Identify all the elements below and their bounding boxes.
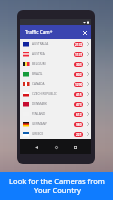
button[interactable]: GERMANY (20, 119, 91, 129)
staticText: Traffic Cam+ (25, 29, 53, 35)
staticText: 802 (76, 73, 82, 77)
button[interactable]: CANADA (20, 79, 91, 89)
staticText: CANADA (32, 82, 45, 86)
staticText: GREECE (32, 132, 44, 136)
staticText: Look for the Cameras from (9, 176, 105, 186)
button[interactable]: AUSTRIA (20, 49, 91, 59)
staticText: AUSTRIA (32, 52, 45, 56)
staticText: 980 (76, 123, 82, 127)
staticText: BELGIUM (32, 62, 46, 66)
staticText: 221 (76, 133, 82, 137)
staticText: CZECH REPUBLIC (32, 92, 57, 96)
button[interactable]: Back (33, 144, 39, 150)
staticText: 612 (76, 113, 82, 117)
button[interactable]: Recents (72, 144, 78, 150)
button[interactable]: FINLAND (20, 109, 91, 119)
button[interactable]: BRAZIL (20, 69, 91, 79)
staticText: 303 (76, 63, 82, 67)
staticText: AUSTRALIA (32, 42, 49, 46)
button[interactable]: CZECH REPUBLIC (20, 89, 91, 99)
button[interactable]: Home (53, 144, 59, 150)
button[interactable]: Close (80, 28, 89, 37)
staticText: 1131 (75, 53, 83, 57)
staticText: FINLAND (32, 112, 46, 116)
button[interactable]: DENMARK (20, 99, 91, 109)
staticText: BRAZIL (32, 72, 43, 76)
staticText: DENMARK (32, 102, 47, 106)
staticText: 415 (76, 93, 82, 97)
button[interactable]: AUSTRALIA (20, 39, 91, 49)
staticText: Your Country (34, 185, 81, 195)
button[interactable]: GREECE (20, 129, 91, 139)
staticText: GERMANY (32, 122, 47, 126)
staticText: 473 (76, 103, 82, 107)
staticText: 1290 (75, 83, 83, 87)
staticText: 2132 (75, 43, 83, 47)
button[interactable]: BELGIUM (20, 59, 91, 69)
